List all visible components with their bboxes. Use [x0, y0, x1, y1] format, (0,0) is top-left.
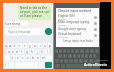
staticText: airport, pick me up? — [20, 10, 50, 14]
button[interactable]: Setup input methods — [56, 38, 99, 44]
button[interactable]: e — [13, 43, 17, 48]
button[interactable]: Send — [45, 28, 52, 35]
button[interactable]: Enter — [93, 64, 99, 68]
button[interactable]: v — [74, 59, 78, 63]
button[interactable]: q — [4, 43, 7, 48]
button[interactable]: n — [84, 59, 88, 63]
button[interactable]: h — [81, 54, 84, 58]
staticText: n — [85, 59, 87, 63]
staticText: on screen — [58, 36, 69, 38]
staticText: Virtual keyboard — [58, 32, 82, 36]
staticText: x — [17, 56, 19, 60]
staticText: l — [47, 50, 48, 54]
button[interactable]: t — [71, 49, 74, 53]
button[interactable]: Enter — [45, 62, 52, 68]
staticText: e — [14, 44, 16, 48]
button[interactable]: p — [48, 43, 52, 48]
staticText: h — [82, 54, 84, 58]
button[interactable]: x — [16, 55, 20, 61]
button[interactable]: s — [11, 49, 14, 54]
button[interactable]: j — [85, 54, 88, 58]
button[interactable]: z — [60, 59, 63, 63]
button[interactable]: m — [89, 59, 93, 63]
button[interactable]: u — [33, 43, 37, 48]
button[interactable]: j — [35, 49, 39, 54]
button[interactable]: e — [63, 49, 66, 53]
staticText: y — [29, 44, 31, 48]
button[interactable]: k — [40, 49, 44, 54]
button[interactable]: c — [21, 55, 25, 61]
button[interactable]: d — [68, 54, 72, 58]
staticText: d — [16, 50, 18, 54]
button[interactable]: h — [30, 49, 34, 54]
staticText: at 9 am please — [20, 14, 42, 18]
button[interactable]: i — [85, 49, 89, 53]
staticText: m — [42, 56, 45, 60]
button[interactable]: t — [23, 43, 27, 48]
staticText: s — [64, 54, 66, 58]
button[interactable]: , — [61, 64, 65, 68]
button[interactable]: Google voice typing — [56, 26, 99, 32]
button[interactable]: b — [31, 55, 35, 61]
button[interactable]: b — [79, 59, 83, 63]
button[interactable]: k — [89, 54, 92, 58]
staticText: t — [24, 44, 26, 48]
button[interactable]: v — [26, 55, 30, 61]
button[interactable]: r — [18, 43, 22, 48]
staticText: made with — [97, 59, 108, 62]
button[interactable]: Type a message — [4, 28, 44, 35]
staticText: h — [31, 50, 33, 54]
button[interactable]: l — [93, 54, 96, 58]
button[interactable]: x — [64, 59, 68, 63]
button[interactable]: o — [43, 43, 47, 48]
staticText: English (US) — [58, 14, 75, 18]
button[interactable]: g — [77, 54, 80, 58]
button[interactable]: f — [73, 54, 76, 58]
button[interactable]: y — [75, 49, 79, 53]
button[interactable]: ? — [55, 64, 60, 68]
button[interactable]: a — [58, 54, 62, 58]
button[interactable]: ? — [4, 62, 8, 68]
button[interactable]: English (US) — [56, 14, 99, 20]
button[interactable]: Multi-language typing — [56, 20, 99, 26]
button[interactable]: g — [25, 49, 29, 54]
button[interactable]: f — [20, 49, 24, 54]
button[interactable]: c — [69, 59, 73, 63]
staticText: u — [81, 49, 83, 53]
button[interactable]: , — [9, 62, 14, 68]
button[interactable] — [66, 64, 87, 68]
button[interactable]: . — [88, 64, 92, 68]
button[interactable]: o — [90, 49, 94, 53]
button[interactable]: . — [39, 62, 44, 68]
button[interactable]: s — [63, 54, 67, 58]
staticText: r — [19, 44, 21, 48]
button[interactable] — [94, 59, 99, 63]
button[interactable]: w — [59, 49, 62, 53]
button[interactable]: w — [8, 43, 12, 48]
staticText: Setup input methods — [63, 39, 93, 43]
button[interactable]: r — [67, 49, 70, 53]
button[interactable]: q — [55, 49, 58, 53]
staticText: b — [80, 59, 82, 63]
button[interactable]: u — [80, 49, 84, 53]
button[interactable]: l — [45, 49, 49, 54]
button[interactable]: i — [38, 43, 42, 48]
button[interactable]: y — [28, 43, 32, 48]
staticText: e — [64, 49, 66, 53]
button[interactable]: Virtual keyboard — [56, 32, 99, 38]
staticText: r — [68, 49, 70, 53]
button[interactable]: n — [36, 55, 40, 61]
button[interactable]: p — [95, 49, 99, 53]
staticText: d — [69, 54, 71, 58]
button[interactable]: m — [41, 55, 45, 61]
button[interactable]: d — [15, 49, 19, 54]
staticText: Choose input method — [58, 9, 91, 13]
staticText: o — [44, 44, 46, 48]
button[interactable]: a — [7, 49, 10, 54]
staticText: k — [90, 54, 92, 58]
button[interactable]: z — [11, 55, 15, 61]
